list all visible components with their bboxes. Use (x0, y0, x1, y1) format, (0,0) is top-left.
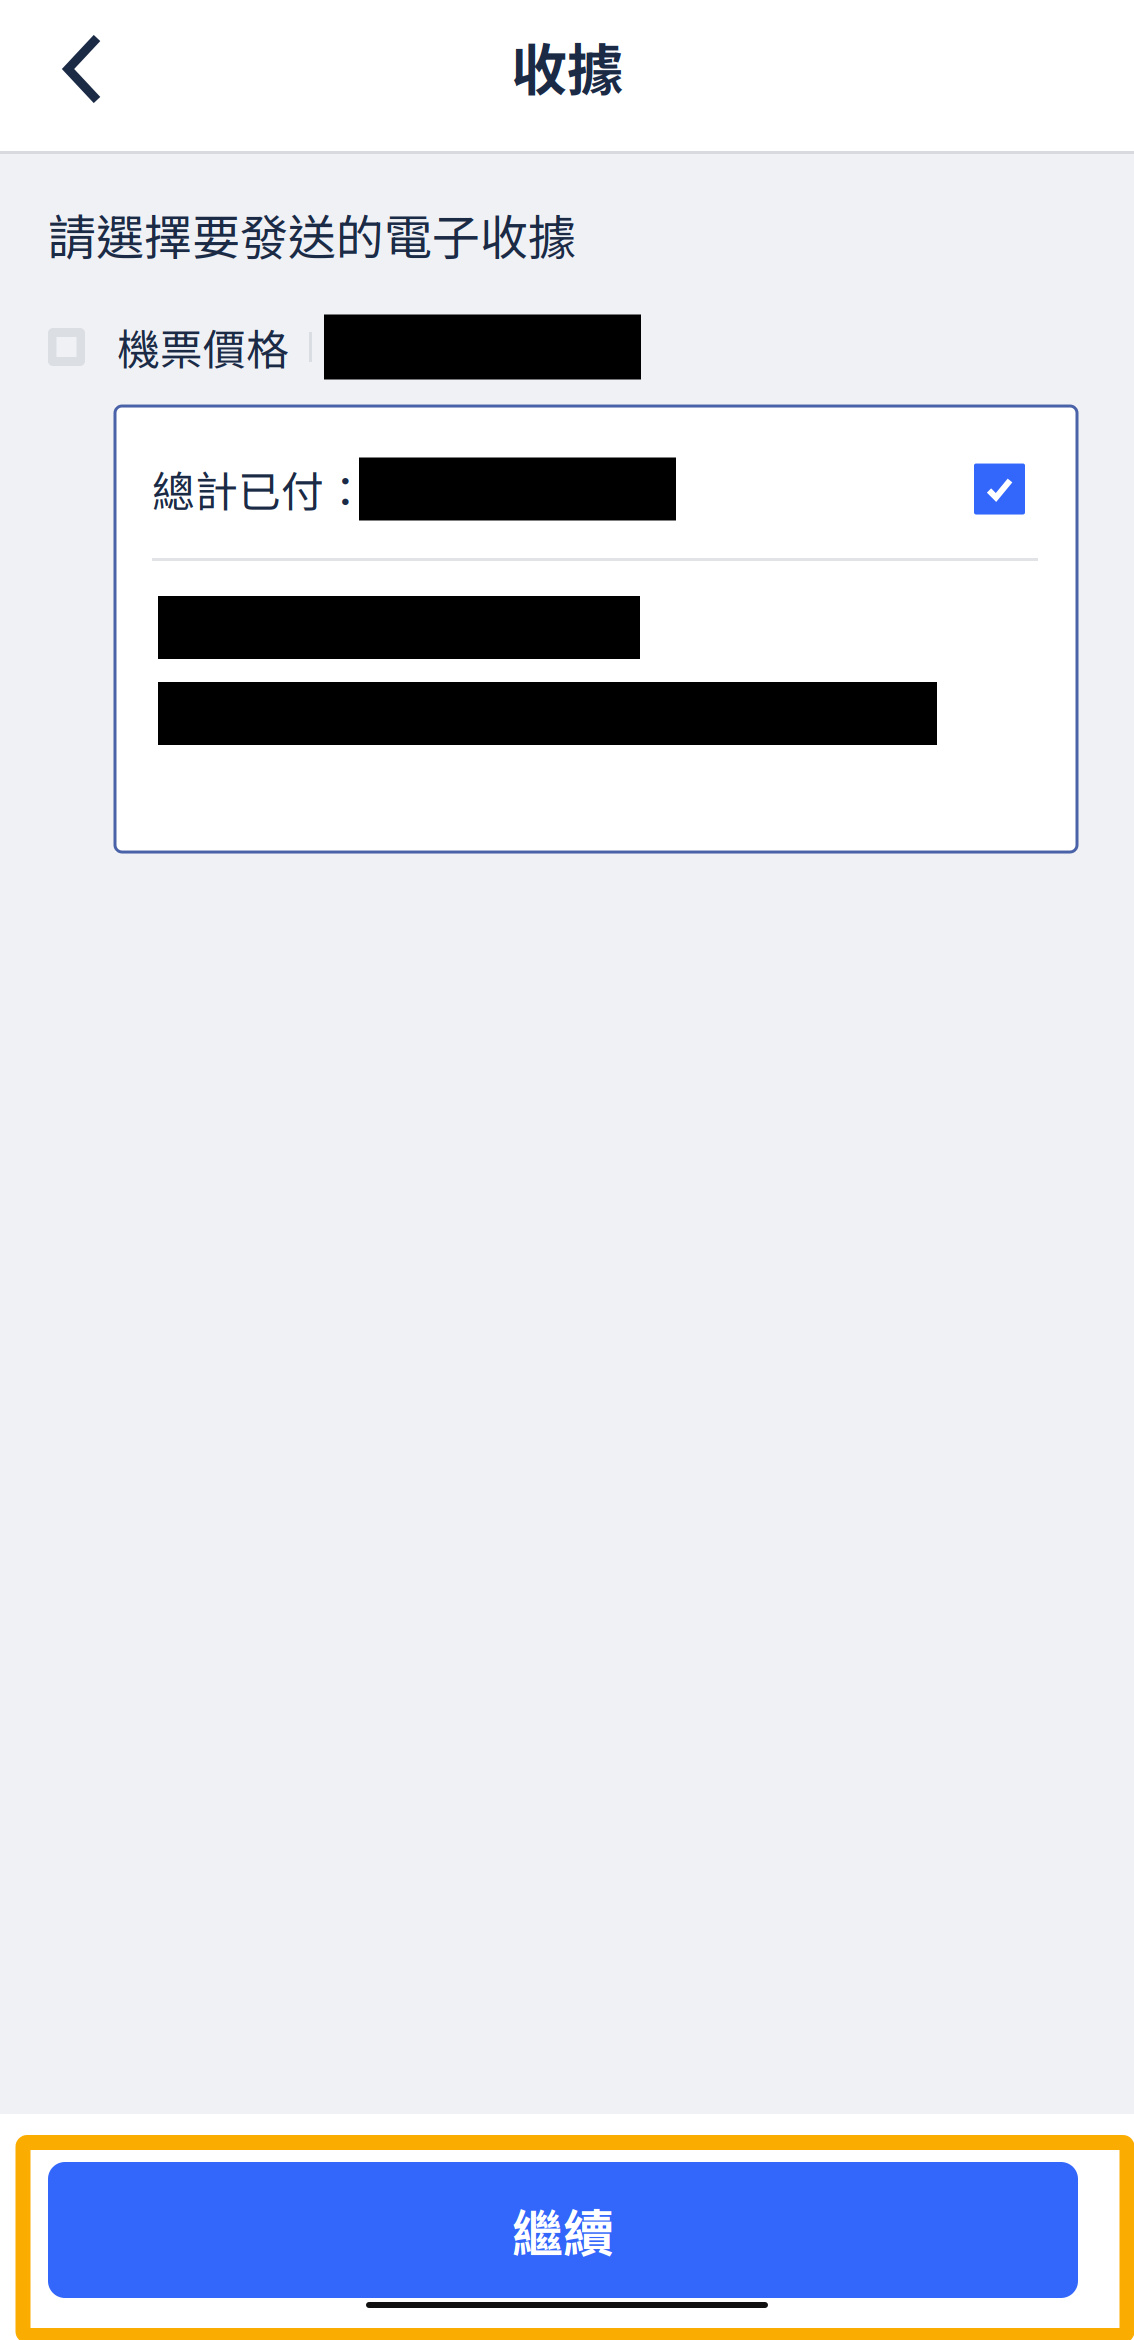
staticText: 機票價格 (117, 316, 289, 378)
staticText: 繼續 (512, 2193, 614, 2267)
button[interactable]: 總計已付： (115, 406, 1077, 852)
button[interactable]: Back (22, 0, 142, 154)
staticText: 收據 (511, 25, 623, 107)
button[interactable]: 繼續 (48, 2162, 1078, 2298)
button[interactable]: 機票價格 (48, 309, 1086, 385)
staticText: 總計已付： (152, 458, 367, 520)
staticText: 請選擇要發送的電子收據 (48, 199, 576, 269)
